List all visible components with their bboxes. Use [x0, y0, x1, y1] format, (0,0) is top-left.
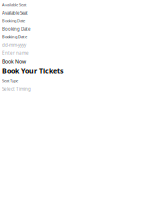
staticText: Enter name — [2, 50, 29, 56]
staticText: Booking Date — [2, 26, 30, 32]
staticText: Booking Date — [2, 34, 27, 39]
staticText: Available Seat — [2, 2, 26, 7]
staticText: Booking Date — [2, 18, 25, 23]
staticText: Available Seat — [2, 10, 28, 16]
staticText: Select Timing — [2, 86, 31, 92]
staticText: Seat Type — [2, 78, 18, 83]
staticText: Book Your Tickets — [2, 66, 64, 76]
staticText: dd-mm-yyyy — [2, 42, 26, 48]
staticText: Book Now — [2, 58, 26, 65]
